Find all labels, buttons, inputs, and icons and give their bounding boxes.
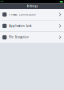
staticText: File Encryption bbox=[9, 35, 29, 39]
button[interactable]: File Encryption bbox=[0, 32, 64, 43]
button[interactable]: Private Connection bbox=[0, 9, 64, 20]
staticText: Private Connection bbox=[9, 13, 36, 16]
staticText: Settings bbox=[26, 4, 37, 8]
button[interactable]: Application Lock bbox=[0, 20, 64, 31]
staticText: ••• bbox=[1, 0, 4, 3]
staticText: Application Lock bbox=[9, 24, 31, 28]
